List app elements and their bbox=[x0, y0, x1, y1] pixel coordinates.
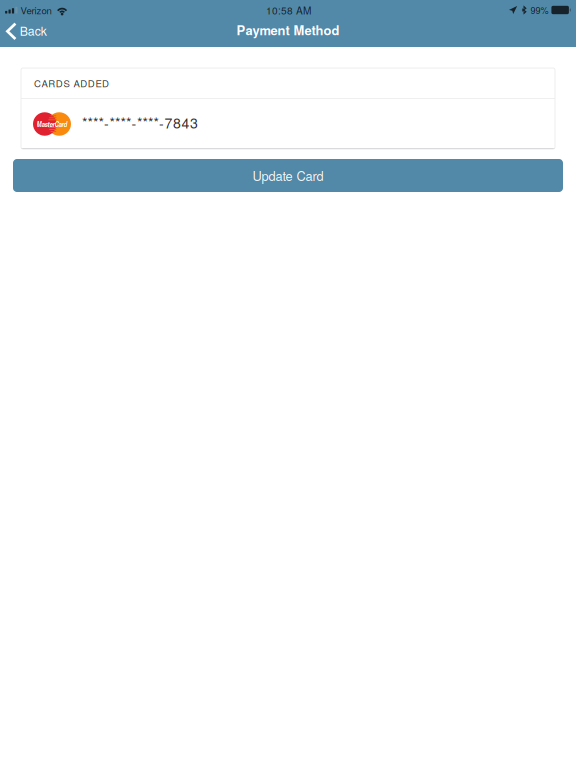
button[interactable]: MasterCard bbox=[21, 99, 555, 149]
staticText: ****-****-****-7843 bbox=[82, 112, 198, 133]
staticText: Back bbox=[20, 22, 47, 39]
staticText: Payment Method bbox=[236, 21, 339, 39]
staticText: Verizon bbox=[21, 3, 52, 17]
button[interactable]: Update Card bbox=[13, 159, 563, 192]
staticText: 99% bbox=[530, 3, 548, 16]
button[interactable]: Back bbox=[0, 21, 55, 46]
staticText: Update Card bbox=[252, 166, 323, 185]
staticText: MasterCard bbox=[36, 119, 67, 129]
staticText: 10:58 AM bbox=[266, 3, 311, 17]
staticText: CARDS ADDED bbox=[34, 76, 109, 90]
